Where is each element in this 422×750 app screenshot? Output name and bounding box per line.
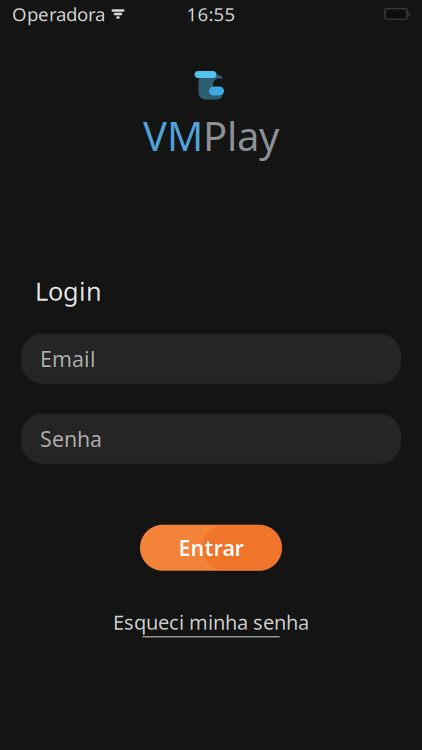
button[interactable]: Esqueci minha senha [105,605,317,641]
staticText: Login [35,274,102,308]
staticText: Senha [40,425,102,453]
button[interactable]: Senha [21,414,401,464]
staticText: VM [143,109,203,162]
staticText: Operadora [12,2,105,26]
staticText: Email [40,345,96,373]
staticText: 16:55 [186,2,235,26]
staticText: Entrar [178,534,243,562]
staticText: Play [203,109,279,162]
button[interactable]: Entrar [140,525,282,571]
staticText: Esqueci minha senha [113,609,309,635]
button[interactable]: Email [21,334,401,384]
